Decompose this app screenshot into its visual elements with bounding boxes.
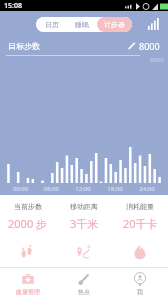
other: Steps [20,244,36,260]
other: Edit goal [127,42,136,51]
staticText: 消耗能量 [126,202,154,211]
button[interactable]: 消耗能量 [112,195,168,237]
staticText: 目标步数 [8,41,40,51]
button[interactable]: Distance [56,237,112,267]
button[interactable]: Signal [146,16,162,32]
staticText: 计步器 [104,20,125,29]
staticText: 健康管理 [16,288,40,296]
button[interactable]: 睡眠 [67,17,97,32]
staticText: 00:00 [5,185,36,193]
staticText: 20千卡 [123,216,158,231]
other: Calories [132,244,148,260]
staticText: 2000 步 [8,216,48,231]
button[interactable]: Calories [112,237,168,267]
button[interactable]: 健康管理 [0,268,56,300]
staticText: 移动距离 [70,202,98,211]
button[interactable]: Edit goal [127,40,160,52]
button[interactable]: Steps [0,237,56,267]
staticText: 3千米 [70,216,99,231]
button[interactable]: 我 [112,268,168,300]
staticText: 睡眠 [75,20,89,29]
other: Distance [76,244,92,260]
staticText: 06:00 [36,185,67,193]
staticText: 12:00 [67,185,99,193]
staticText: 24:00 [131,185,163,193]
button[interactable]: 当前步数 [0,195,56,237]
staticText: 15:08 [4,1,22,11]
staticText: 我 [137,288,143,296]
staticText: 当前步数 [14,202,42,211]
button[interactable]: 热点 [56,268,112,300]
button[interactable]: 日历 [36,17,67,32]
button[interactable]: 计步器 [97,17,132,32]
staticText: 日历 [45,20,59,29]
staticText: 8000 [150,56,164,64]
button[interactable]: 移动距离 [56,195,112,237]
staticText: 8000 [139,40,160,52]
staticText: 18:00 [99,185,131,193]
staticText: 热点 [78,288,90,296]
